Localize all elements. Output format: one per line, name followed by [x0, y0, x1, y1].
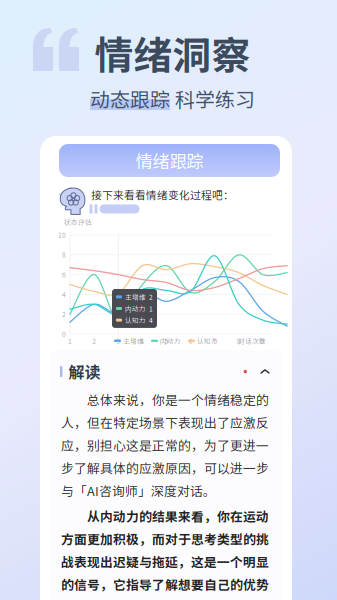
staticText: 总体来说，你是一个情绪稳定的人，但在特定场景下表现出了应激反应，别担心这是正常的…: [61, 390, 269, 500]
staticText: 科学练习: [175, 84, 255, 113]
staticText: 0: [62, 329, 66, 339]
staticText: 2: [92, 336, 96, 346]
staticText: 情绪跟踪: [135, 148, 203, 173]
staticText: 认知力: [125, 315, 146, 325]
staticText: 5: [164, 336, 168, 346]
staticText: 8: [237, 336, 241, 346]
staticText: 1: [149, 304, 153, 313]
staticText: 2: [62, 309, 66, 319]
staticText: 4: [140, 336, 144, 346]
staticText: 7: [213, 336, 217, 346]
staticText: 4: [149, 315, 153, 325]
staticText: 1: [68, 336, 72, 346]
staticText: 8: [62, 250, 66, 260]
staticText: 9: [261, 336, 265, 346]
staticText: 主增维: [123, 336, 144, 346]
staticText: 6: [62, 270, 66, 279]
staticText: 3: [116, 336, 120, 346]
staticText: 6: [189, 336, 193, 346]
staticText: 接下来看看情绪变化过程吧：: [91, 187, 234, 202]
staticText: 情绪洞察: [94, 25, 250, 81]
staticText: 解读: [68, 360, 100, 383]
staticText: 对话次数: [238, 336, 266, 346]
staticText: 认知力: [197, 336, 218, 346]
staticText: 4: [62, 289, 66, 299]
staticText: 主增维: [125, 292, 146, 302]
staticText: 状态评估: [64, 217, 92, 227]
staticText: 2: [149, 292, 153, 302]
staticText: 从内动力的结果来看，你在运动方面更加积极，而对于思考类型的挑战表现出迟疑与拖延，…: [61, 507, 269, 600]
staticText: 内动力: [160, 336, 181, 346]
staticText: 内动力: [125, 304, 146, 313]
staticText: 10: [58, 230, 66, 240]
staticText: 动态跟踪: [90, 84, 170, 113]
button[interactable]: 收起: [258, 365, 272, 379]
